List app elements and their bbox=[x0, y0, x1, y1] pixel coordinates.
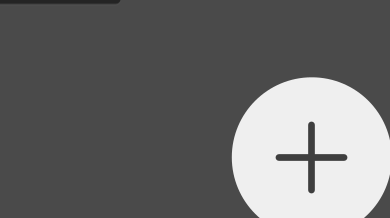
button[interactable]: Add bbox=[232, 77, 390, 218]
